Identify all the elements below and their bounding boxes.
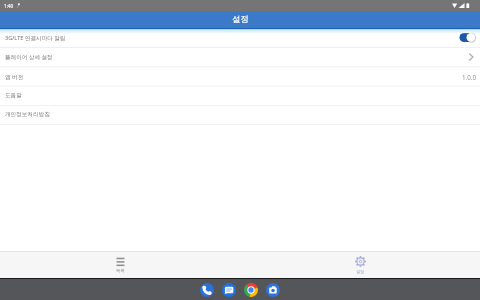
staticText: 1:40 xyxy=(4,3,14,9)
staticText: 설정 xyxy=(356,269,365,274)
staticText: 3G/LTE 연결시마다 알림 xyxy=(5,34,66,42)
staticText: 도움말 xyxy=(5,92,22,99)
button[interactable]: 개인정보처리방침 xyxy=(0,105,480,124)
button[interactable]: 전화 xyxy=(200,283,214,297)
staticText: 설정 xyxy=(232,14,249,25)
button[interactable]: 카메라 xyxy=(266,283,280,297)
button[interactable]: Chrome xyxy=(244,283,258,297)
button[interactable]: 3G/LTE 연결시마다 알림 xyxy=(0,28,480,47)
button[interactable]: 앱 버전 xyxy=(0,67,480,86)
other: 열기 xyxy=(466,52,476,62)
button[interactable]: 도움말 xyxy=(0,86,480,105)
staticText: 1.0.0 xyxy=(462,73,476,81)
button[interactable]: 메시지 xyxy=(222,283,236,297)
staticText: 개인정보처리방침 xyxy=(5,111,50,118)
staticText: 앱 버전 xyxy=(5,73,24,81)
button[interactable]: 플레이어 상세 설정 xyxy=(0,47,480,66)
button[interactable]: 설정 xyxy=(240,252,480,278)
button[interactable]: 목록 xyxy=(0,252,240,278)
staticText: 플레이어 상세 설정 xyxy=(5,53,53,61)
staticText: 목록 xyxy=(116,268,125,273)
